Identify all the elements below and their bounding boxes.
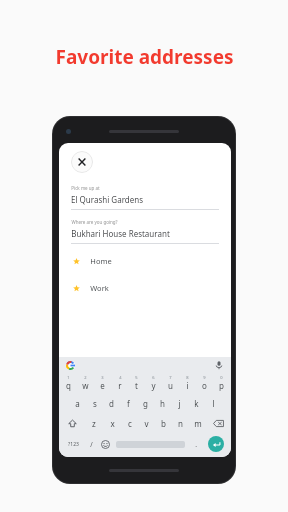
staticText: Pick me up at	[71, 185, 100, 191]
staticText: q	[66, 380, 71, 391]
button[interactable]: Pick me up at	[59, 185, 231, 210]
staticText: e	[100, 380, 105, 391]
staticText: Home	[90, 256, 112, 266]
button[interactable]: .	[189, 433, 203, 455]
staticText: t	[135, 380, 138, 391]
button[interactable]: Shift	[60, 413, 85, 433]
button[interactable]: 5	[128, 373, 145, 393]
staticText: 4	[119, 375, 122, 380]
button[interactable]: n	[172, 413, 189, 433]
button[interactable]: s	[86, 393, 103, 413]
staticText: j	[178, 398, 181, 409]
button[interactable]: 4	[111, 373, 128, 393]
button[interactable]: Backspace	[206, 413, 230, 433]
button[interactable]: Close	[71, 151, 93, 173]
staticText: h	[160, 398, 165, 409]
button[interactable]: Voice input	[214, 360, 224, 370]
staticText: 2	[84, 375, 87, 380]
button[interactable]: /	[84, 433, 98, 455]
staticText: Favorite addresses	[55, 44, 234, 70]
button[interactable]: a	[68, 393, 86, 413]
staticText: x	[110, 418, 115, 429]
staticText: d	[109, 398, 114, 409]
staticText: Where are you going?	[71, 219, 118, 225]
button[interactable]: g	[137, 393, 154, 413]
staticText: c	[128, 418, 132, 429]
staticText: m	[194, 418, 202, 429]
button[interactable]: v	[138, 413, 155, 433]
button[interactable]: 3	[94, 373, 111, 393]
staticText: l	[212, 398, 215, 409]
staticText: z	[92, 418, 96, 429]
button[interactable]: 7	[162, 373, 179, 393]
button[interactable]: Enter	[208, 436, 224, 452]
button[interactable]: ?123	[62, 433, 84, 455]
button[interactable]: 0	[213, 373, 230, 393]
staticText: r	[118, 380, 122, 391]
button[interactable]: m	[189, 413, 206, 433]
button[interactable]: c	[121, 413, 138, 433]
button[interactable]: x	[103, 413, 121, 433]
staticText: 9	[203, 375, 206, 380]
staticText: Bukhari House Restaurant	[71, 228, 170, 239]
button[interactable]: d	[103, 393, 120, 413]
button[interactable]: 9	[196, 373, 213, 393]
staticText: u	[168, 380, 173, 391]
button[interactable]: f	[120, 393, 137, 413]
button[interactable]: 1	[60, 373, 77, 393]
staticText: f	[127, 398, 130, 409]
button[interactable]: Work	[59, 281, 231, 295]
staticText: n	[178, 418, 183, 429]
staticText: 0	[220, 375, 223, 380]
staticText: .	[195, 440, 197, 449]
staticText: 5	[135, 375, 138, 380]
staticText: y	[151, 380, 156, 391]
staticText: v	[144, 418, 149, 429]
button[interactable]: b	[155, 413, 172, 433]
staticText: w	[82, 380, 89, 391]
staticText: 7	[169, 375, 172, 380]
button[interactable]: j	[171, 393, 188, 413]
staticText: b	[161, 418, 166, 429]
button[interactable]: 8	[179, 373, 196, 393]
button[interactable]: h	[154, 393, 171, 413]
staticText: k	[194, 398, 199, 409]
button[interactable]: Google	[66, 361, 75, 370]
staticText: g	[143, 398, 148, 409]
button[interactable]: 6	[145, 373, 162, 393]
staticText: 3	[101, 375, 104, 380]
staticText: 8	[186, 375, 189, 380]
staticText: a	[75, 398, 80, 409]
button[interactable]: Where are you going?	[59, 219, 231, 244]
staticText: Work	[90, 283, 109, 293]
button[interactable]: Emoji	[98, 433, 112, 455]
staticText: 6	[152, 375, 155, 380]
button[interactable]: z	[85, 413, 103, 433]
button[interactable]: 2	[77, 373, 94, 393]
staticText: s	[93, 398, 97, 409]
staticText: p	[219, 380, 224, 391]
staticText: El Qurashi Gardens	[71, 194, 143, 205]
staticText: o	[202, 380, 207, 391]
button[interactable]: Home	[59, 254, 231, 268]
staticText: /	[90, 440, 93, 449]
staticText: i	[186, 380, 189, 391]
button[interactable]: k	[188, 393, 205, 413]
button[interactable]: l	[205, 393, 222, 413]
staticText: ?123	[68, 441, 79, 448]
staticText: 1	[67, 375, 70, 380]
